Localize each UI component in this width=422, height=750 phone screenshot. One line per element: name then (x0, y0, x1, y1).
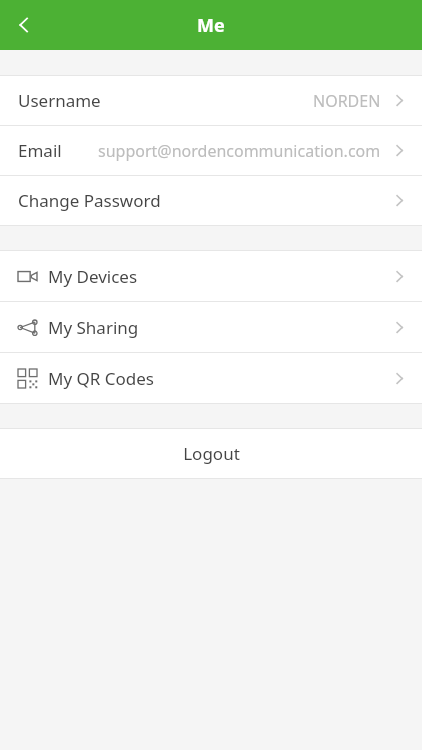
staticText: My Sharing (48, 316, 139, 339)
staticText: Logout (183, 442, 240, 465)
staticText: Username (18, 89, 101, 112)
button[interactable]: Back (0, 1, 48, 49)
button[interactable]: My Devices (0, 251, 422, 301)
button[interactable]: My Sharing (0, 302, 422, 352)
staticText: NORDEN (313, 90, 381, 112)
button[interactable]: Email (0, 126, 422, 175)
staticText: Me (197, 13, 225, 38)
staticText: Email (18, 139, 62, 162)
button[interactable]: Logout (0, 429, 422, 478)
button[interactable]: My QR Codes (0, 353, 422, 403)
staticText: My Devices (48, 265, 138, 288)
staticText: Change Password (18, 189, 161, 212)
button[interactable]: Change Password (0, 176, 422, 225)
staticText: support@nordencommunication.com (98, 140, 381, 162)
button[interactable]: Username (0, 76, 422, 125)
staticText: My QR Codes (48, 367, 154, 390)
